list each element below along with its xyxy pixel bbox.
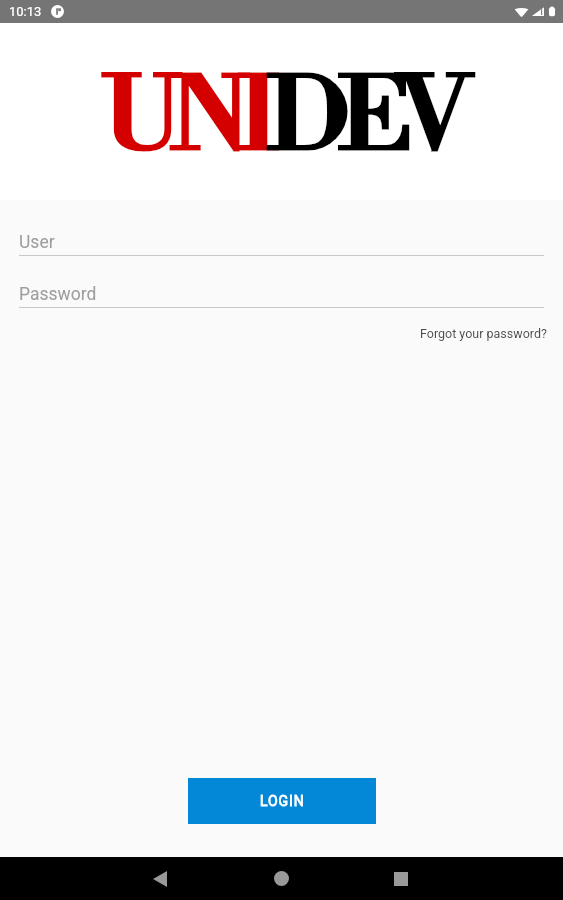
- button[interactable]: LOGIN: [188, 778, 376, 824]
- button[interactable]: Forgot your password?: [418, 324, 549, 343]
- staticText: LOGIN: [260, 793, 305, 809]
- staticText: User: [19, 232, 55, 253]
- staticText: UNIDEV: [102, 57, 462, 182]
- button[interactable]: Recents: [377, 857, 425, 900]
- staticText: Password: [19, 284, 97, 305]
- button[interactable]: Home: [257, 857, 305, 900]
- button[interactable]: Back: [136, 857, 184, 900]
- staticText: 10:13: [9, 4, 42, 19]
